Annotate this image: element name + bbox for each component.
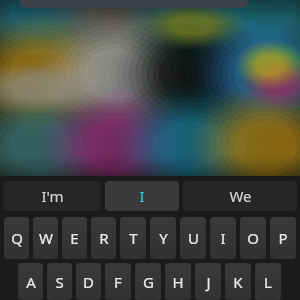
button[interactable]: We [183,181,297,211]
staticText: K [233,272,243,292]
button[interactable]: A [18,263,43,300]
button[interactable]: R [91,217,116,259]
button[interactable]: I'm [3,181,101,211]
button[interactable]: H [165,263,191,300]
staticText: R [99,228,109,248]
staticText: W [39,228,53,248]
staticText: We [229,186,252,206]
staticText: Q [11,228,23,248]
button[interactable]: S [47,263,72,300]
button[interactable]: I [105,181,179,211]
staticText: E [70,228,79,248]
button[interactable]: I [210,217,236,259]
staticText: I [139,186,145,206]
staticText: Y [159,228,168,248]
staticText: I [220,228,226,248]
staticText: A [26,272,36,292]
button[interactable]: F [105,263,131,300]
button[interactable]: Q [4,217,29,259]
button[interactable]: G [135,263,161,300]
button[interactable]: Search [20,0,248,8]
button[interactable]: D [76,263,101,300]
staticText: H [172,272,184,292]
button[interactable]: U [180,217,206,259]
staticText: I'm [41,186,64,206]
button[interactable]: P [270,217,296,259]
button[interactable]: L [255,263,281,300]
button[interactable]: K [225,263,251,300]
staticText: J [206,272,211,292]
staticText: F [114,272,122,292]
staticText: U [188,228,199,248]
button[interactable]: T [120,217,146,259]
button[interactable]: O [240,217,266,259]
staticText: T [129,228,138,248]
button[interactable]: W [33,217,58,259]
staticText: G [143,272,154,292]
staticText: O [247,228,259,248]
staticText: P [278,228,288,248]
staticText: S [55,272,64,292]
staticText: D [83,272,94,292]
button[interactable]: J [195,263,221,300]
staticText: L [264,272,272,292]
button[interactable]: Y [150,217,176,259]
button[interactable]: E [62,217,87,259]
